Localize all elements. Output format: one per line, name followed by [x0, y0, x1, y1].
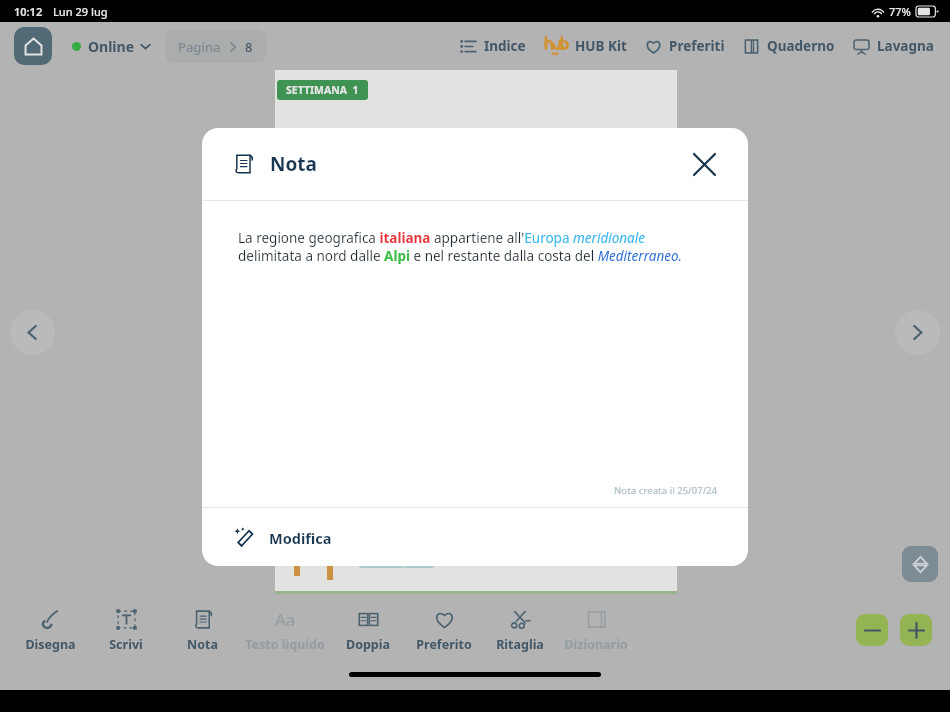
button[interactable]: Quaderno [741, 32, 837, 60]
button[interactable]: Pagina precedente [10, 310, 55, 355]
staticText: Quaderno [767, 37, 835, 55]
staticText: Modifica [269, 528, 332, 548]
button[interactable]: Chiudi [684, 144, 724, 184]
staticText: Doppia [346, 636, 390, 653]
staticText: Nota [270, 151, 317, 177]
button[interactable]: Dizionario [558, 603, 634, 657]
staticText: Nota creata il 25/07/24 [614, 484, 718, 497]
button[interactable]: Aa [240, 603, 330, 657]
staticText: Aa [275, 608, 296, 631]
staticText: HUB Kit [575, 37, 627, 55]
staticText: REGOLE p. 119 [365, 555, 428, 567]
staticText: Ritaglia [496, 636, 544, 653]
staticText: Testo liquido [245, 636, 325, 653]
staticText: Online [88, 37, 134, 56]
button[interactable]: Indice [458, 32, 528, 60]
button[interactable]: Online [70, 33, 152, 60]
button[interactable]: Espandi [902, 546, 938, 582]
staticText: Lavagna [877, 37, 934, 55]
staticText: 8 [245, 38, 253, 56]
button[interactable]: Aumenta zoom [900, 614, 932, 646]
button[interactable]: Home [14, 27, 52, 65]
button[interactable]: Ritaglia [482, 603, 558, 657]
staticText: Scrivi [109, 636, 143, 653]
button[interactable]: Doppia [330, 603, 406, 657]
button[interactable]: Pagina successiva [895, 310, 940, 355]
staticText: Preferiti [669, 37, 725, 55]
staticText: Disegna [25, 636, 76, 653]
staticText: 10:12 [14, 4, 43, 19]
staticText: Indice [484, 37, 526, 55]
staticText: Pagina [178, 38, 221, 56]
button[interactable]: Preferito [406, 603, 482, 657]
button[interactable]: Scrivi [88, 603, 164, 657]
staticText: Dizionario [564, 636, 628, 653]
button[interactable]: Pagina [165, 30, 266, 63]
button[interactable]: HUB Kit [542, 30, 629, 62]
button[interactable]: Riduci zoom [856, 614, 888, 646]
staticText: SETTIMANA 1 [286, 83, 359, 97]
staticText: Preferito [416, 636, 472, 653]
staticText: Lun 29 lug [53, 4, 108, 19]
staticText: 77% [889, 4, 911, 19]
button[interactable]: Disegna [12, 603, 88, 657]
button[interactable]: Lavagna [851, 32, 936, 60]
staticText: La regione geografica italiana appartien… [238, 229, 708, 265]
staticText: Nota [187, 636, 218, 653]
button[interactable]: Preferiti [643, 32, 727, 60]
button[interactable]: Nota [164, 603, 240, 657]
button[interactable]: Modifica [226, 521, 340, 554]
